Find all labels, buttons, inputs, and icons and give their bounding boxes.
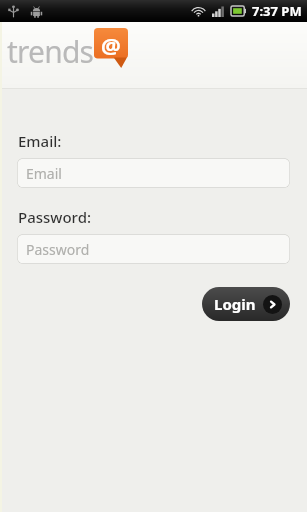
staticText: Email [26,164,62,183]
button[interactable]: Email [17,158,290,188]
staticText: Login [214,294,256,314]
button[interactable]: Password [17,234,290,264]
staticText: Password [26,240,90,259]
staticText: @ [101,30,121,60]
staticText: Email: [18,131,62,151]
staticText: trends [7,31,94,72]
staticText: 7:37 PM [252,2,302,20]
button[interactable]: Login [202,287,290,321]
staticText: Password: [18,207,92,227]
